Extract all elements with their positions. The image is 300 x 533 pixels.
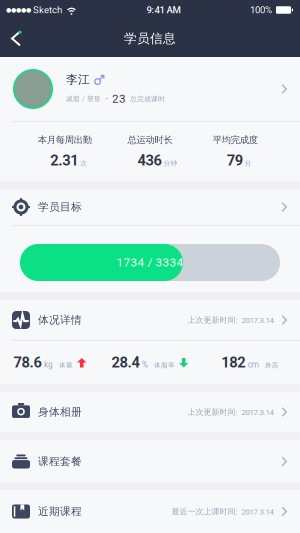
button[interactable]: Back xyxy=(0,20,32,57)
staticText: 体况详情 xyxy=(38,313,82,327)
staticText: 436 xyxy=(137,152,161,169)
staticText: 182 xyxy=(221,354,245,371)
staticText: 课程套餐 xyxy=(38,455,82,468)
staticText: 79 xyxy=(227,152,243,169)
staticText: 23 xyxy=(112,92,126,106)
staticText: 9:41 AM xyxy=(146,4,180,16)
staticText: 上次更新时间: 2017.3.14 xyxy=(187,407,273,417)
staticText: 2.31 xyxy=(50,152,78,169)
staticText: 78.6 xyxy=(13,354,41,371)
staticText: 100% xyxy=(250,4,272,16)
button[interactable]: 近期课程 xyxy=(0,490,300,533)
button[interactable]: 体况详情 xyxy=(0,300,300,340)
staticText: ●●●●● xyxy=(6,6,31,13)
button[interactable]: 课程套餐 xyxy=(0,440,300,483)
staticText: 分钟 xyxy=(163,159,177,167)
staticText: kg xyxy=(44,360,53,369)
button[interactable]: 学员目标 xyxy=(0,189,300,225)
staticText: 次 xyxy=(80,159,87,167)
button[interactable]: 身体相册 xyxy=(0,392,300,432)
staticText: 李江 xyxy=(66,72,90,87)
staticText: 上次更新时间: 2017.3.14 xyxy=(187,315,273,325)
staticText: cm xyxy=(248,360,259,369)
staticText: Sketch xyxy=(31,4,62,16)
staticText: 体脂率 xyxy=(154,361,175,369)
staticText: 本月每周出勤 xyxy=(38,134,92,146)
staticText: • xyxy=(105,95,107,103)
staticText: 平均完成度 xyxy=(213,134,258,146)
staticText: 学员信息 xyxy=(124,30,176,46)
staticText: 最近一次上课时间: 2017.3.14 xyxy=(171,506,273,517)
staticText: 减脂 / 塑形 xyxy=(66,95,101,103)
staticText: 总完成课时 xyxy=(130,95,165,103)
staticText: 分 xyxy=(245,159,252,167)
button[interactable]: 李江 xyxy=(0,57,300,121)
staticText: 近期课程 xyxy=(38,505,82,518)
staticText: 学员目标 xyxy=(38,200,82,214)
staticText: 1734 / 3334 xyxy=(116,256,183,269)
staticText: 身高 xyxy=(265,361,279,369)
staticText: 体重 xyxy=(59,361,73,369)
staticText: % xyxy=(142,360,148,369)
staticText: 身体相册 xyxy=(38,405,82,419)
staticText: 28.4 xyxy=(111,354,139,371)
staticText: 总运动时长 xyxy=(127,134,172,146)
